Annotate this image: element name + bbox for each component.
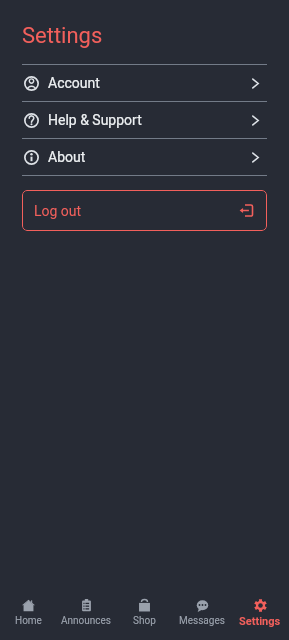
button[interactable]: Messages — [173, 590, 231, 640]
staticText: Messages — [179, 615, 225, 627]
staticText: Settings — [239, 615, 281, 628]
staticText: Settings — [22, 23, 103, 49]
staticText: Home — [15, 615, 42, 627]
button[interactable]: Log out — [22, 190, 267, 231]
button[interactable]: Account — [22, 65, 267, 101]
button[interactable]: Settings — [231, 590, 289, 640]
staticText: Help & Support — [48, 112, 142, 128]
button[interactable]: About — [22, 139, 267, 175]
staticText: Account — [48, 75, 100, 91]
staticText: About — [48, 149, 86, 165]
button[interactable]: Shop — [115, 590, 173, 640]
staticText: Shop — [133, 615, 156, 627]
button[interactable]: Announces — [57, 590, 115, 640]
staticText: Announces — [61, 615, 112, 627]
button[interactable]: Home — [0, 590, 57, 640]
button[interactable]: Help & Support — [22, 102, 267, 138]
staticText: Log out — [34, 203, 82, 219]
